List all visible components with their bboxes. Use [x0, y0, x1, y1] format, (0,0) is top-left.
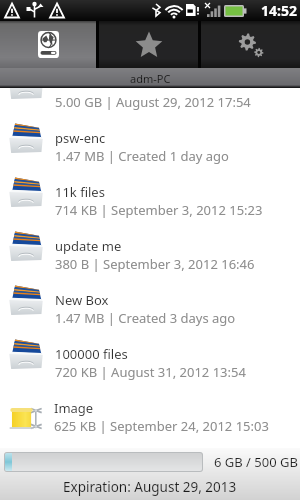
staticText: 5.00 GB | August 29, 2012 17:54	[55, 93, 251, 111]
staticText: 1.47 MB | Created 3 days ago	[55, 309, 236, 327]
staticText: 714 KB | September 3, 2012 15:23	[55, 201, 263, 219]
staticText: psw-enc	[55, 129, 106, 147]
staticText: adm-PC	[130, 71, 171, 86]
button[interactable]: Settings	[201, 21, 300, 68]
staticText: New Box	[55, 291, 109, 309]
button[interactable]: 5.00 GB | August 29, 2012 17:54	[0, 88, 300, 118]
staticText: 625 KB | September 24, 2012 15:03	[54, 417, 269, 435]
button[interactable]: psw-enc	[0, 118, 300, 172]
button[interactable]: 100000 files	[0, 334, 300, 388]
button[interactable]: Computers	[0, 21, 96, 68]
button[interactable]: New Box	[0, 280, 300, 334]
staticText: update me	[55, 237, 122, 255]
staticText: 100000 files	[55, 345, 128, 363]
staticText: Image	[54, 399, 94, 417]
button[interactable]: update me	[0, 226, 300, 280]
staticText: 1.47 MB | Created 1 day ago	[55, 147, 229, 165]
staticText: 6 GB / 500 GB	[214, 453, 298, 471]
button[interactable]: 11k files	[0, 172, 300, 226]
staticText: 14:52	[261, 1, 297, 20]
staticText: 720 KB | August 31, 2012 13:54	[55, 363, 246, 381]
staticText: Expiration: August 29, 2013	[63, 478, 237, 496]
button[interactable]: Image	[0, 388, 300, 442]
button[interactable]: Favorites	[99, 21, 198, 68]
staticText: 11k files	[55, 183, 105, 201]
staticText: 380 B | September 3, 2012 16:46	[55, 255, 255, 273]
